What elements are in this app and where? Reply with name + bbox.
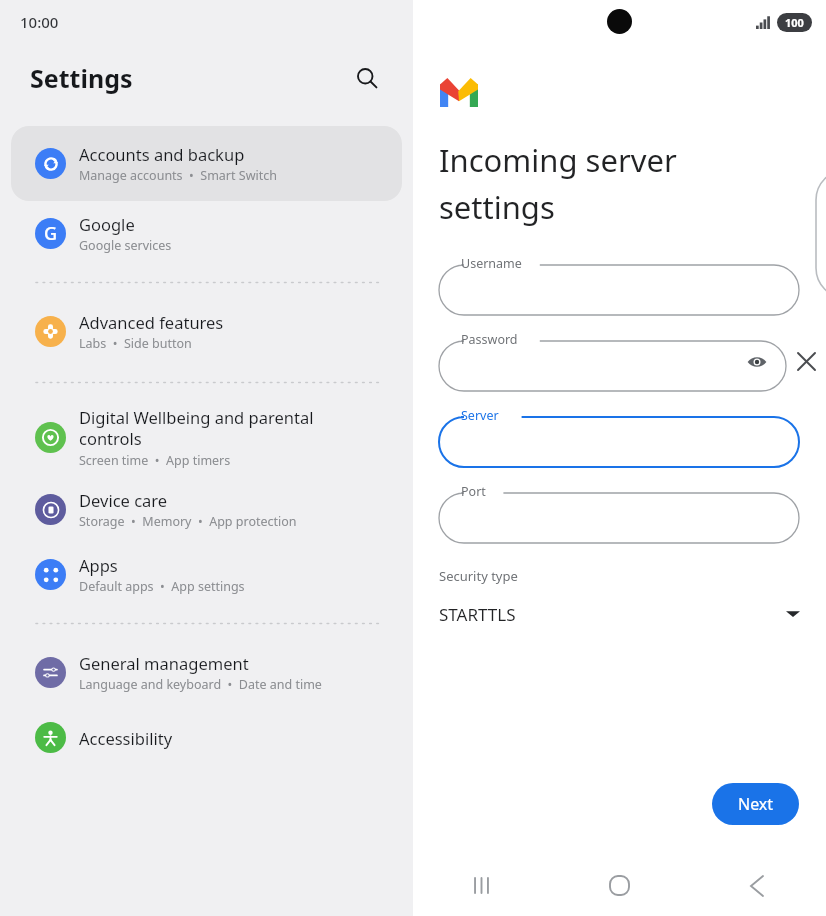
button[interactable]: Device care bbox=[0, 477, 413, 542]
staticText: Digital Wellbeing and parental controls bbox=[79, 406, 314, 450]
staticText: STARTTLS bbox=[439, 603, 516, 626]
button[interactable]: General management bbox=[0, 640, 413, 705]
staticText: Google services bbox=[79, 237, 172, 254]
button[interactable]: Advanced features bbox=[0, 299, 413, 364]
button[interactable]: Accessibility bbox=[0, 705, 413, 770]
button[interactable]: Home bbox=[550, 855, 688, 916]
staticText: Language and keyboard • Date and time bbox=[79, 676, 322, 693]
staticText: Server bbox=[461, 407, 499, 424]
button[interactable]: Digital Wellbeing and parental controls bbox=[0, 397, 413, 477]
button[interactable]: Apps bbox=[0, 542, 413, 607]
staticText: 10:00 bbox=[20, 12, 59, 32]
button[interactable]: Port bbox=[439, 484, 799, 543]
staticText: Google bbox=[79, 213, 135, 235]
staticText: Username bbox=[461, 255, 522, 272]
button[interactable]: Clear bbox=[786, 332, 826, 391]
button[interactable]: Password bbox=[439, 332, 786, 391]
button[interactable]: STARTTLS bbox=[413, 597, 826, 631]
button[interactable]: Back bbox=[688, 855, 826, 916]
button[interactable]: Accounts and backup bbox=[11, 126, 402, 201]
staticText: Accessibility bbox=[79, 727, 173, 749]
staticText: Storage • Memory • App protection bbox=[79, 513, 297, 530]
staticText: Labs • Side button bbox=[79, 335, 192, 352]
staticText: Apps bbox=[79, 554, 118, 576]
staticText: Manage accounts • Smart Switch bbox=[79, 167, 277, 184]
staticText: Accounts and backup bbox=[79, 143, 245, 165]
staticText: Screen time • App timers bbox=[79, 452, 231, 469]
button[interactable]: Server bbox=[439, 408, 799, 467]
staticText: 100 bbox=[785, 15, 804, 30]
staticText: Password bbox=[461, 331, 518, 348]
staticText: Port bbox=[461, 483, 486, 500]
staticText: Incoming server settings bbox=[439, 139, 677, 228]
staticText: General management bbox=[79, 652, 249, 674]
staticText: Next bbox=[738, 793, 774, 815]
button[interactable]: Show password bbox=[742, 347, 772, 377]
staticText: Default apps • App settings bbox=[79, 578, 245, 595]
button[interactable]: Next bbox=[712, 783, 799, 825]
staticText: G bbox=[44, 221, 58, 246]
staticText: Advanced features bbox=[79, 311, 224, 333]
staticText: Security type bbox=[439, 567, 518, 585]
button[interactable]: Recents bbox=[413, 855, 550, 916]
staticText: Device care bbox=[79, 489, 168, 511]
staticText: Settings bbox=[30, 61, 133, 95]
button[interactable]: Username bbox=[439, 256, 799, 315]
button[interactable]: G bbox=[0, 201, 413, 266]
button[interactable]: Search bbox=[347, 58, 387, 98]
